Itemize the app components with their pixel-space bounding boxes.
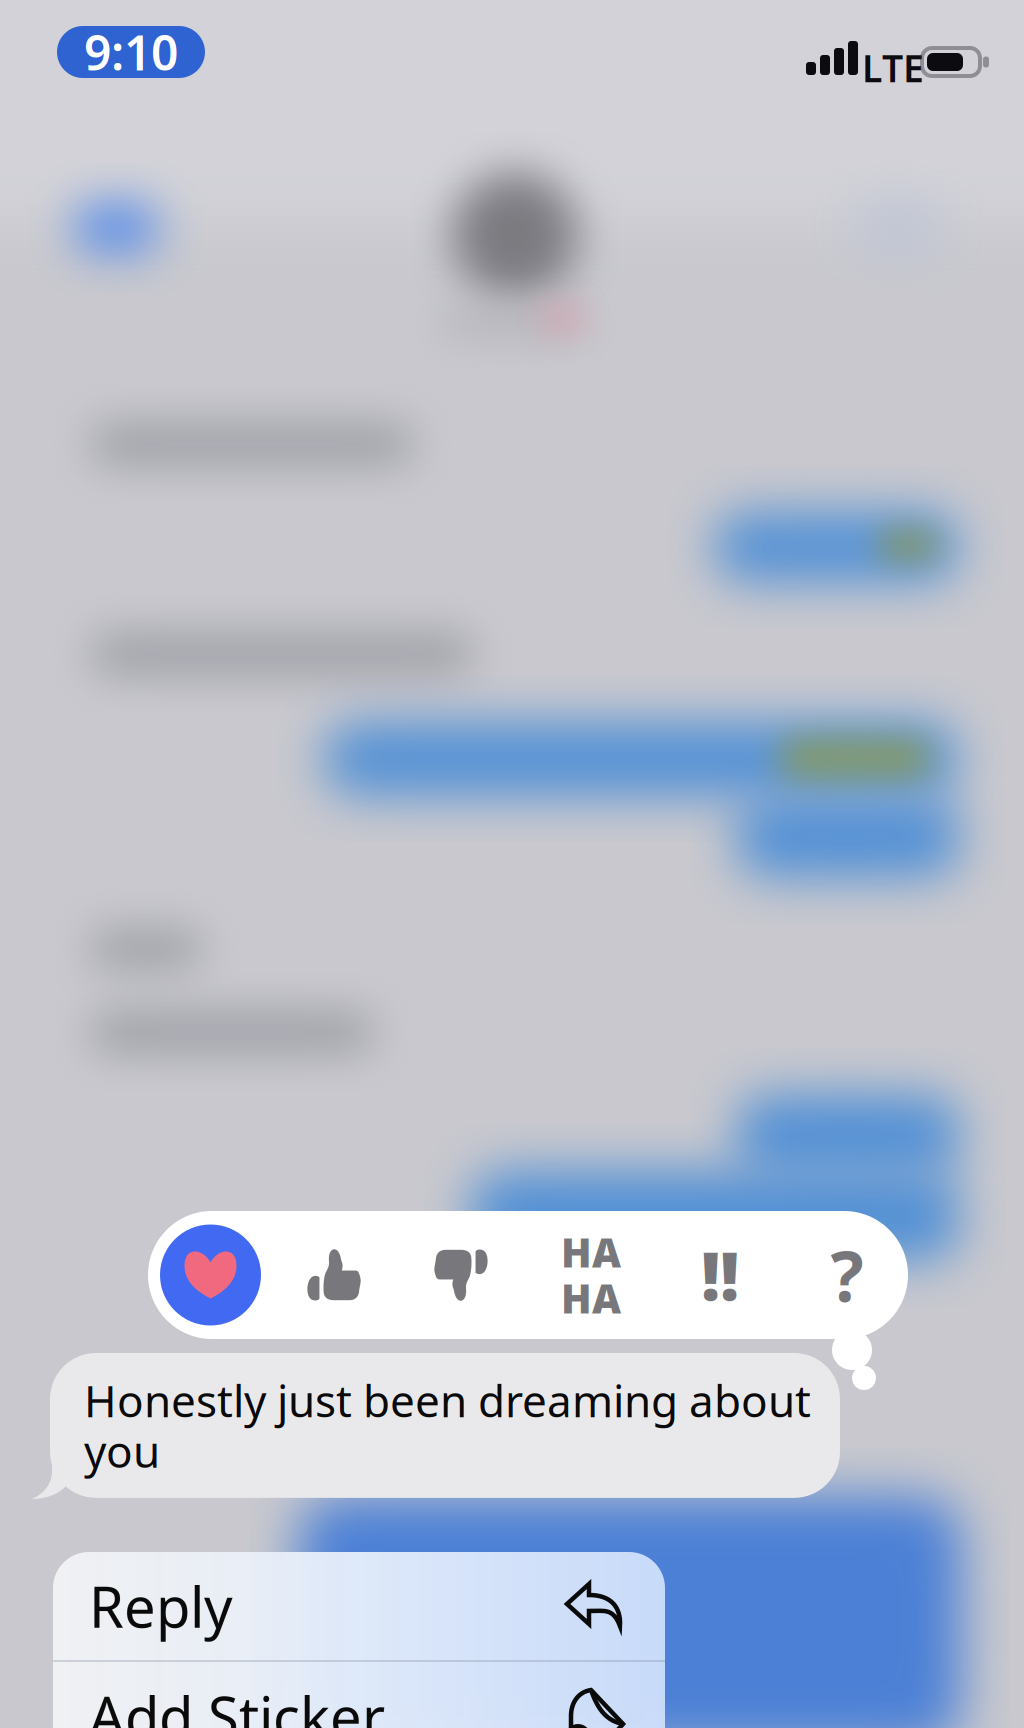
button[interactable]: Love reaction	[160, 1224, 261, 1325]
button[interactable]: Exclamation reaction	[672, 1211, 768, 1339]
button[interactable]: Reply	[53, 1552, 665, 1660]
staticText: Honestly just been dreaming about	[84, 1371, 811, 1429]
staticText: 9:10	[84, 20, 178, 84]
button[interactable]: Thumbs up reaction	[286, 1211, 382, 1339]
staticText: HA	[561, 1225, 621, 1278]
button[interactable]: Add Sticker	[53, 1662, 665, 1728]
staticText: ?	[830, 1229, 863, 1321]
button[interactable]: Haha reaction	[543, 1211, 639, 1339]
button[interactable]: Thumbs down reaction	[413, 1211, 509, 1339]
staticText: !!	[701, 1231, 739, 1319]
staticText: LTE	[862, 43, 924, 93]
button[interactable]: Question mark reaction	[799, 1211, 895, 1339]
staticText: Reply	[89, 1569, 233, 1643]
staticText: HA	[561, 1271, 621, 1325]
staticText: Add Sticker	[89, 1679, 385, 1728]
staticText: you	[84, 1421, 160, 1480]
